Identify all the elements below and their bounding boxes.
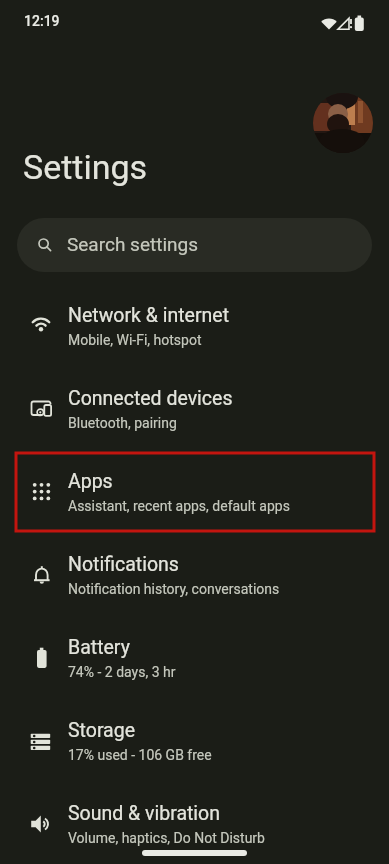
staticText: Volume, haptics, Do Not Disturb	[68, 830, 265, 846]
button[interactable]: Network & internet	[0, 288, 389, 368]
button[interactable]: Connected devices	[0, 371, 389, 451]
button[interactable]	[313, 93, 373, 153]
button[interactable]: Apps	[0, 454, 389, 534]
button[interactable]: Sound & vibration	[0, 786, 389, 864]
staticText: Notifications	[68, 553, 179, 576]
staticText: Network & internet	[68, 304, 230, 327]
staticText: Settings	[23, 147, 148, 187]
staticText: 12:19	[24, 13, 60, 29]
staticText: Connected devices	[68, 387, 233, 410]
button[interactable]: Battery	[0, 620, 389, 700]
staticText: Sound & vibration	[68, 802, 221, 825]
staticText: Assistant, recent apps, default apps	[68, 498, 290, 514]
button[interactable]: Notifications	[0, 537, 389, 617]
staticText: Apps	[68, 470, 113, 493]
button[interactable]: Storage	[0, 703, 389, 783]
staticText: Battery	[68, 636, 130, 659]
staticText: 17% used - 106 GB free	[68, 747, 212, 763]
button[interactable]: Search settings	[17, 218, 372, 272]
staticText: Storage	[68, 719, 136, 742]
staticText: 74% - 2 days, 3 hr	[68, 664, 176, 680]
staticText: Notification history, conversations	[68, 581, 280, 597]
staticText: Search settings	[67, 233, 198, 255]
staticText: Mobile, Wi-Fi, hotspot	[68, 332, 202, 348]
staticText: Bluetooth, pairing	[68, 415, 177, 431]
